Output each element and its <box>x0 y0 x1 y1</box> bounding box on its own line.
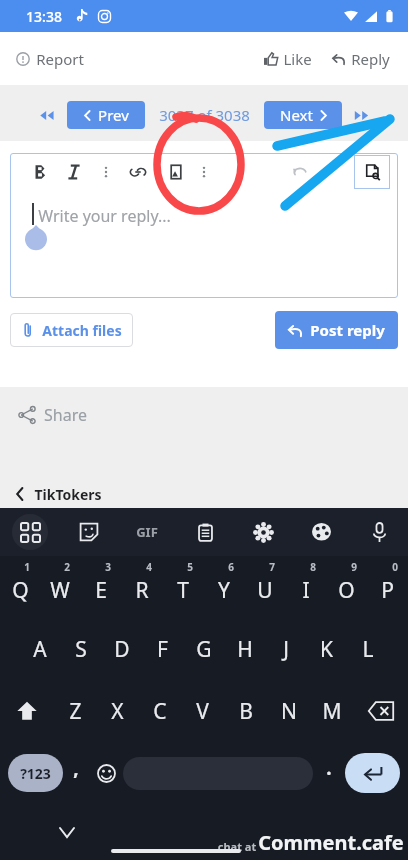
staticText: Attach files <box>42 321 122 340</box>
staticText: 4 <box>146 560 152 574</box>
button[interactable]: Prev <box>67 101 145 129</box>
button[interactable]: Apps <box>0 508 59 556</box>
staticText: Prev <box>98 105 129 125</box>
button[interactable]: Space <box>123 757 313 790</box>
button[interactable]: Like <box>260 45 316 73</box>
button[interactable]: Shift <box>0 680 54 742</box>
button[interactable]: Post reply <box>275 311 398 349</box>
button[interactable]: K <box>306 618 347 680</box>
staticText: Q <box>12 576 29 605</box>
staticText: W <box>50 576 70 605</box>
button[interactable]: V <box>181 680 224 742</box>
staticText: X <box>111 697 124 726</box>
staticText: S <box>75 635 87 664</box>
staticText: 6 <box>228 560 234 574</box>
button[interactable]: Themes <box>292 508 350 556</box>
button[interactable]: , <box>63 742 89 804</box>
staticText: Comment.cafe <box>258 829 404 856</box>
button[interactable]: L <box>347 618 388 680</box>
button[interactable]: Stickers <box>59 508 118 556</box>
staticText: 7 <box>269 560 275 574</box>
button[interactable]: Insert link <box>128 162 148 182</box>
staticText: L <box>362 635 374 664</box>
button[interactable]: X <box>96 680 138 742</box>
staticText: 2 <box>64 560 70 574</box>
button[interactable]: G <box>183 618 224 680</box>
button[interactable]: Clipboard <box>176 508 234 556</box>
button[interactable]: Bold <box>30 162 50 182</box>
button[interactable]: TikTokers <box>0 480 408 508</box>
staticText: , <box>73 755 79 781</box>
button[interactable]: More text options <box>96 162 116 182</box>
staticText: F <box>157 635 168 664</box>
button[interactable]: Z <box>54 680 96 742</box>
staticText: P <box>381 576 394 605</box>
button[interactable]: . <box>313 742 345 804</box>
staticText: M <box>322 697 342 726</box>
button[interactable]: J <box>265 618 306 680</box>
staticText: J <box>283 635 289 664</box>
button[interactable]: C <box>138 680 181 742</box>
staticText: 5 <box>187 560 193 574</box>
button[interactable]: Voice input <box>350 508 408 556</box>
staticText: TikTokers <box>34 485 102 504</box>
staticText: O <box>338 576 355 605</box>
staticText: Write your reply... <box>38 205 171 227</box>
staticText: Like <box>283 49 312 69</box>
button[interactable]: 3 <box>80 556 121 618</box>
button[interactable]: 1 <box>0 556 40 618</box>
button[interactable]: Hide keyboard <box>55 820 79 844</box>
button[interactable]: A <box>19 618 60 680</box>
button[interactable]: GIF <box>118 508 176 556</box>
staticText: N <box>281 697 297 726</box>
button[interactable]: 6 <box>203 556 244 618</box>
staticText: T <box>177 576 189 605</box>
staticText: 1 <box>24 560 30 574</box>
button[interactable]: N <box>267 680 310 742</box>
button[interactable]: Insert image <box>166 162 186 182</box>
button[interactable]: 4 <box>121 556 162 618</box>
button[interactable]: First page <box>35 106 59 125</box>
staticText: D <box>114 635 130 664</box>
button[interactable]: Attach files <box>10 313 133 347</box>
button[interactable]: H <box>224 618 265 680</box>
button[interactable]: Preview <box>354 155 390 189</box>
button[interactable]: F <box>142 618 183 680</box>
staticText: Z <box>69 697 82 726</box>
button[interactable]: Report <box>12 45 88 73</box>
button[interactable]: 7 <box>244 556 285 618</box>
button[interactable]: Italic <box>64 162 84 182</box>
button[interactable]: Enter <box>345 753 400 793</box>
button[interactable]: 8 <box>285 556 326 618</box>
staticText: GIF <box>136 523 158 541</box>
button[interactable]: Share <box>14 400 91 430</box>
button[interactable]: Backspace <box>353 680 408 742</box>
staticText: K <box>320 635 333 664</box>
staticText: 3037 of 3038 <box>159 105 250 125</box>
staticText: H <box>237 635 253 664</box>
button[interactable]: Next <box>264 101 342 129</box>
button[interactable]: Emoji <box>89 742 123 804</box>
staticText: V <box>196 697 209 726</box>
staticText: G <box>196 635 212 664</box>
button[interactable]: Last page <box>350 106 374 125</box>
staticText: ?123 <box>20 764 51 783</box>
button[interactable]: M <box>310 680 353 742</box>
staticText: . <box>326 755 332 781</box>
button[interactable]: 2 <box>40 556 80 618</box>
button[interactable]: ?123 <box>8 754 63 792</box>
button[interactable]: 0 <box>367 556 408 618</box>
button[interactable]: B <box>224 680 267 742</box>
button[interactable]: Undo <box>290 162 310 182</box>
button[interactable]: 9 <box>326 556 367 618</box>
button[interactable]: Settings <box>234 508 292 556</box>
staticText: R <box>135 576 149 605</box>
staticText: B <box>239 697 253 726</box>
button[interactable]: 5 <box>162 556 203 618</box>
button[interactable]: More insert options <box>194 162 214 182</box>
button[interactable]: Reply <box>328 45 394 73</box>
staticText: chat at <box>216 839 258 854</box>
button[interactable]: D <box>101 618 142 680</box>
button[interactable]: S <box>60 618 101 680</box>
staticText: Share <box>44 404 87 426</box>
